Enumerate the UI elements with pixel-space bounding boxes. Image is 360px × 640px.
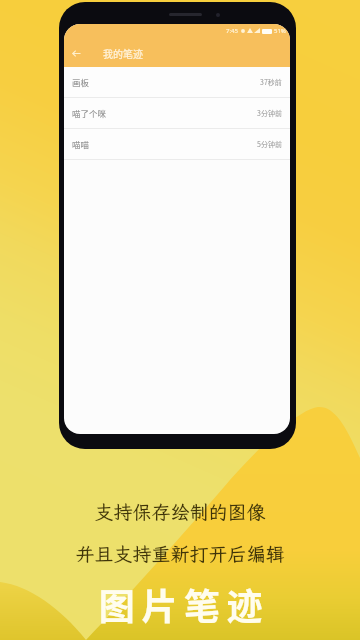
staticText: 5分钟前 [257,139,282,149]
staticText: 喵喵 [72,138,90,150]
staticText: 51% [274,27,286,35]
staticText: 图片笔迹 [4,578,360,630]
button[interactable]: 喵喵 [64,129,290,159]
button[interactable]: 画板 [64,67,290,97]
staticText: 喵了个咪 [72,107,107,119]
staticText: 画板 [72,76,90,88]
staticText: 7:45 [226,27,238,35]
staticText: 并且支持重新打开后编辑 [0,541,360,566]
button[interactable]: 喵了个咪 [64,98,290,128]
button[interactable]: Back [64,41,88,65]
staticText: 37秒前 [260,77,282,87]
staticText: 3分钟前 [257,108,282,118]
staticText: 支持保存绘制的图像 [0,499,360,524]
staticText: 我的笔迹 [103,46,143,60]
